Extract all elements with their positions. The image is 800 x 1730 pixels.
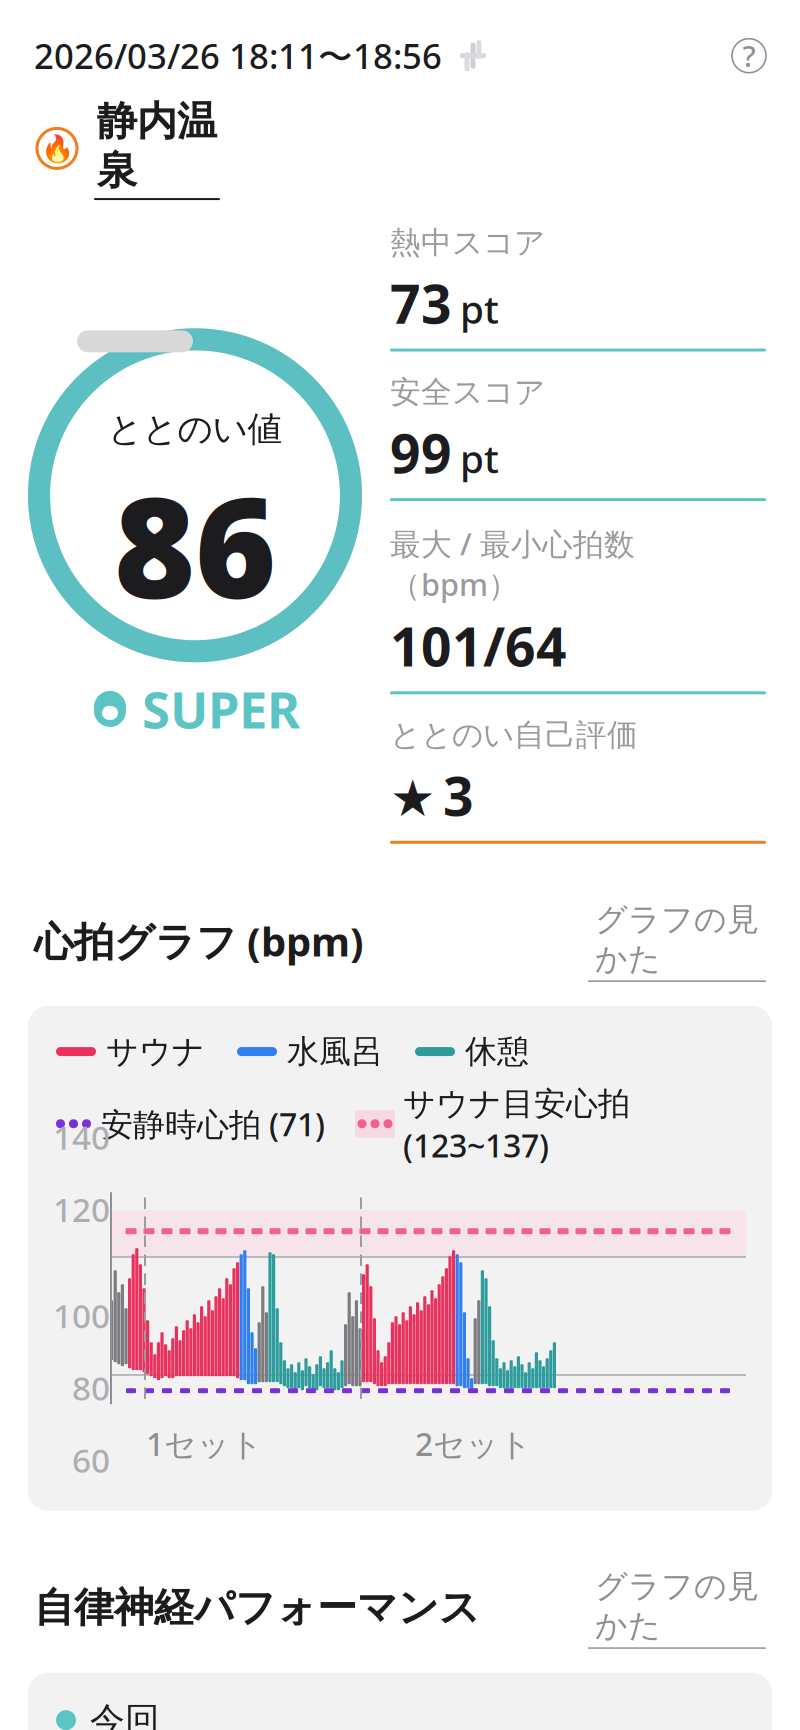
staticText: ととのい値 <box>107 408 282 450</box>
staticText: 休憩 <box>465 1032 529 1071</box>
button[interactable]: 🔥 <box>0 97 800 200</box>
staticText: 今回 <box>90 1699 160 1730</box>
staticText: ? <box>742 36 755 75</box>
staticText: 73 <box>390 268 452 338</box>
staticText: サウナ目安心拍 (123~137) <box>403 1081 630 1166</box>
staticText: 120 <box>53 1187 110 1231</box>
staticText: 自律神経パフォーマンス <box>34 1583 480 1632</box>
staticText: 60 <box>72 1438 110 1482</box>
staticText: 安全スコア <box>390 374 545 411</box>
staticText: グラフの見かた <box>595 900 759 978</box>
staticText: 99 <box>390 417 452 488</box>
staticText: 3 <box>443 760 474 831</box>
staticText: 100 <box>53 1293 110 1337</box>
staticText: 🔥 <box>40 133 73 164</box>
staticText: ととのい自己評価 <box>390 716 638 754</box>
staticText: 2セット <box>415 1422 532 1465</box>
staticText: 101/64 <box>390 610 567 681</box>
staticText: 1セット <box>146 1422 263 1465</box>
staticText: 140 <box>53 1115 110 1159</box>
staticText: ★ <box>390 770 435 827</box>
staticText: グラフの見かた <box>595 1567 759 1645</box>
staticText: サウナ <box>106 1032 205 1071</box>
button[interactable]: ヘルプ <box>732 39 766 73</box>
staticText: 静内温泉 <box>97 97 217 195</box>
staticText: 水風呂 <box>287 1032 383 1071</box>
staticText: 心拍グラフ (bpm) <box>34 914 364 967</box>
staticText: SUPER <box>142 675 300 743</box>
staticText: pt <box>460 433 499 484</box>
button[interactable]: グラフの見かた <box>588 900 766 982</box>
staticText: 2026/03/26 18:11〜18:56 <box>34 33 442 79</box>
staticText: 86 <box>114 452 276 637</box>
staticText: 最大 / 最小心拍数（bpm） <box>390 523 635 604</box>
staticText: 80 <box>72 1365 110 1410</box>
staticText: 安静時心拍 (71) <box>101 1102 325 1145</box>
staticText: pt <box>460 283 499 334</box>
button[interactable]: グラフの見かた <box>588 1567 766 1649</box>
staticText: 熱中スコア <box>390 224 545 262</box>
